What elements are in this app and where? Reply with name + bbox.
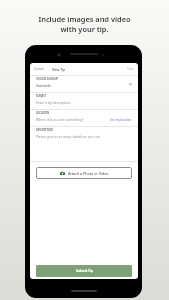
button[interactable]: Save xyxy=(126,65,135,73)
button[interactable]: Use my location xyxy=(110,118,132,122)
button[interactable]: LOCATION xyxy=(30,110,138,126)
staticText: Save xyxy=(127,67,134,71)
other: Choose group xyxy=(128,82,132,86)
staticText: Statewide xyxy=(36,83,52,87)
staticText: Where did you see something? xyxy=(36,117,84,121)
staticText: Please give us as many details as you ca… xyxy=(36,134,101,138)
staticText: LOCATION xyxy=(36,111,49,114)
staticText: CHOOSE A GROUP xyxy=(36,77,59,80)
staticText: Use my location xyxy=(110,118,132,122)
button[interactable]: SUBJECT xyxy=(30,93,138,109)
staticText: Enter a tip description... xyxy=(36,100,73,104)
staticText: Attach a Photo or Video xyxy=(68,171,109,176)
button[interactable]: DESCRIPTION xyxy=(30,127,138,161)
staticText: SUBJECT xyxy=(36,94,47,97)
staticText: with your tip. xyxy=(60,24,109,34)
button[interactable]: Camera xyxy=(36,167,132,179)
button[interactable]: Submit Tip xyxy=(36,265,132,277)
button[interactable]: CHOOSE A GROUP xyxy=(30,76,138,92)
staticText: New Tip xyxy=(52,67,66,72)
other: Camera xyxy=(60,171,65,176)
staticText: Cancel xyxy=(34,67,44,71)
staticText: Submit Tip xyxy=(76,269,93,273)
staticText: DESCRIPTION xyxy=(36,128,53,131)
button[interactable]: Cancel xyxy=(33,65,45,73)
staticText: Include images and video xyxy=(38,14,131,24)
